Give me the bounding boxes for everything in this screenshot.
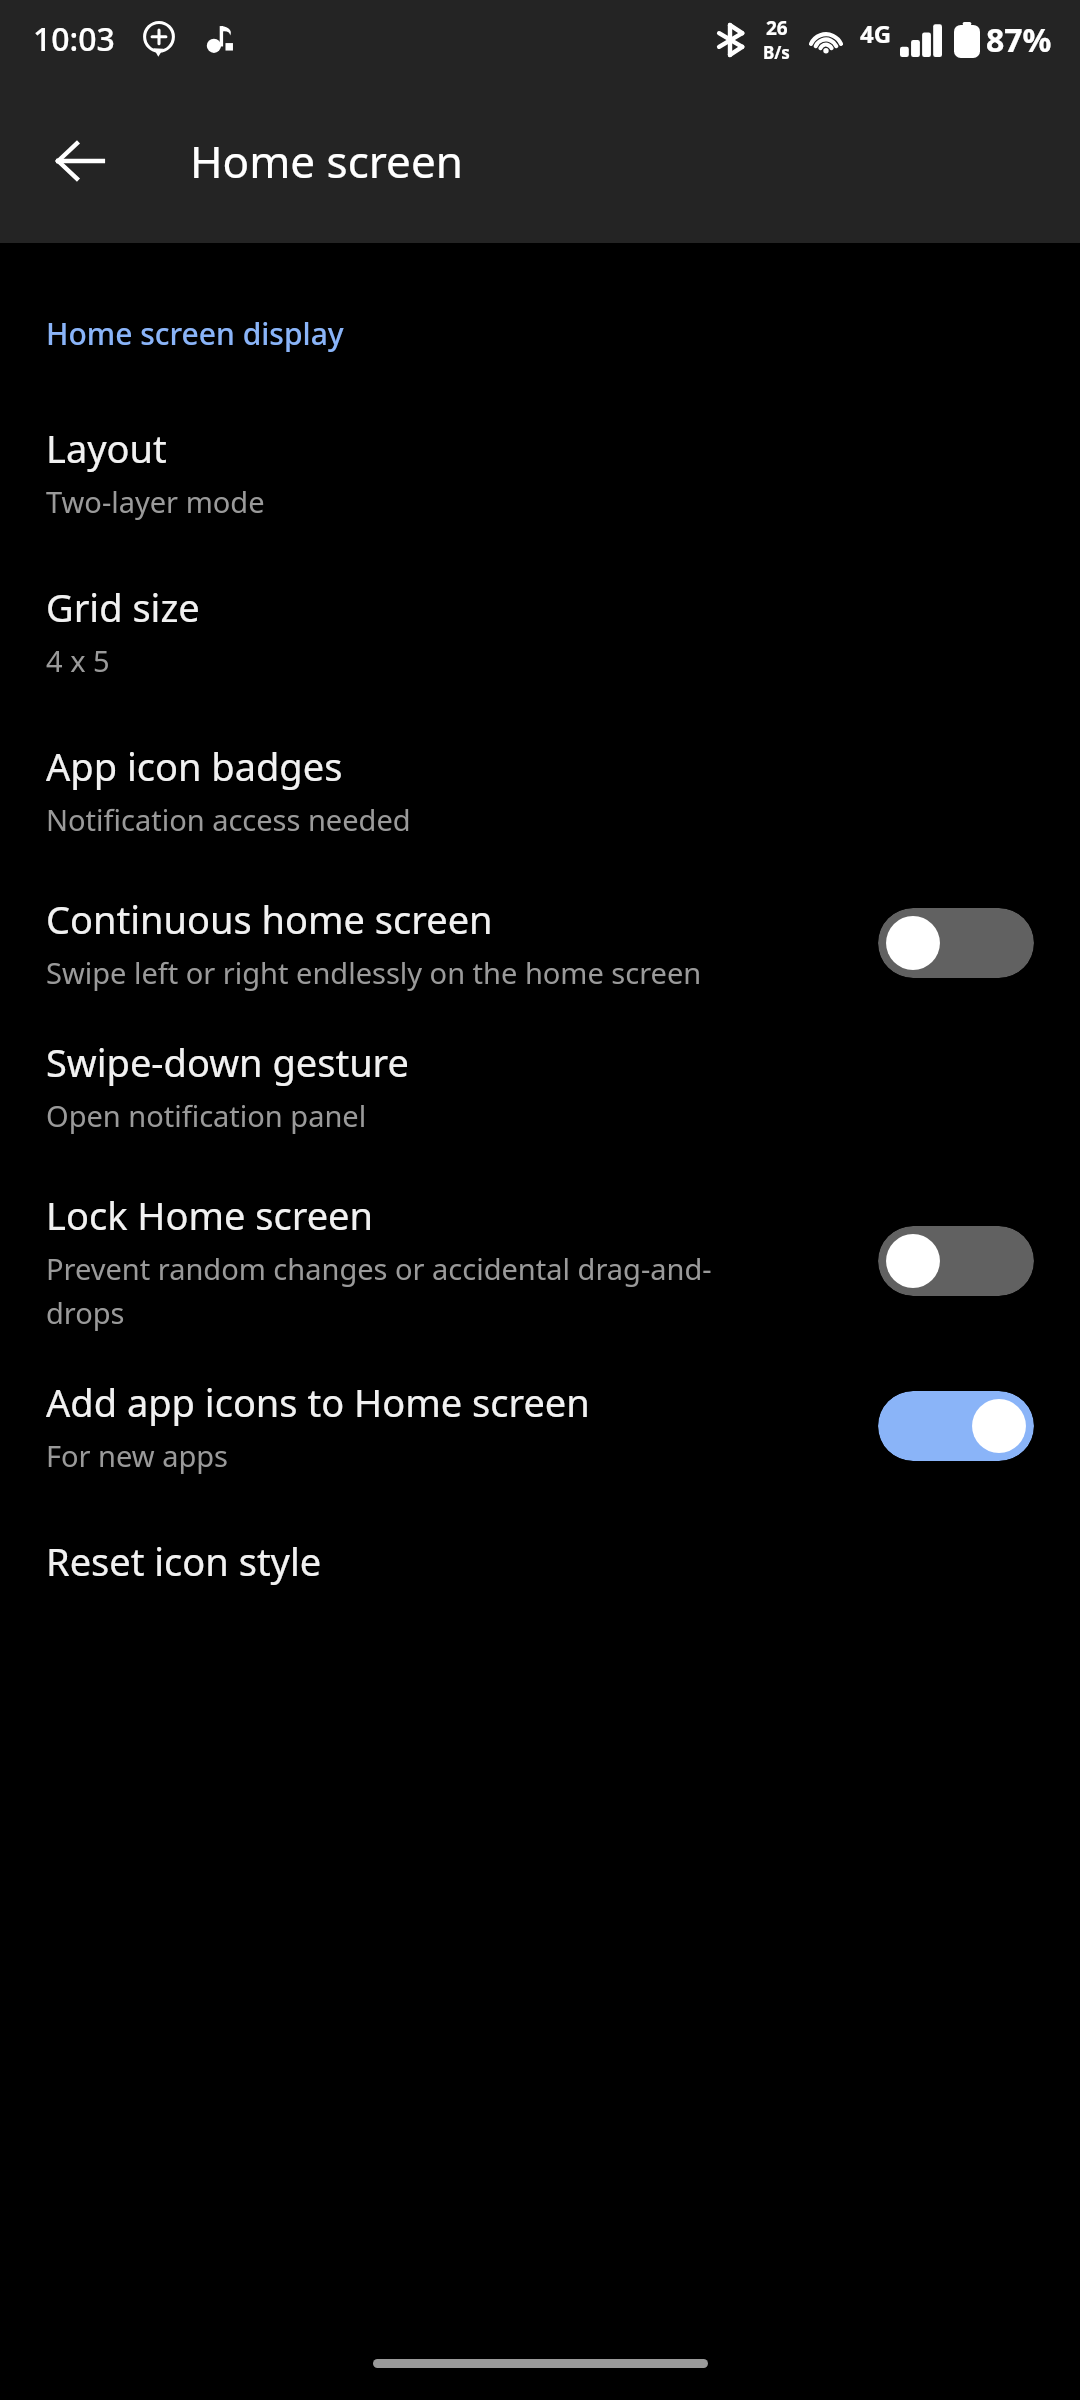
button[interactable]: Add app icons to Home screen bbox=[0, 1370, 1080, 1481]
button[interactable]: Off bbox=[878, 908, 1034, 978]
staticText: Notification access needed bbox=[46, 800, 411, 839]
staticText: 4 x 5 bbox=[46, 641, 110, 680]
staticText: Swipe left or right endlessly on the hom… bbox=[46, 953, 746, 992]
staticText: Prevent random changes or accidental dra… bbox=[46, 1249, 746, 1332]
staticText: Open notification panel bbox=[46, 1096, 367, 1135]
staticText: Home screen bbox=[190, 131, 463, 191]
staticText: B/s bbox=[763, 41, 790, 64]
button[interactable]: On bbox=[878, 1391, 1034, 1461]
staticText: 10:03 bbox=[33, 17, 115, 61]
staticText: Swipe-down gesture bbox=[46, 1036, 409, 1088]
button[interactable]: Back bbox=[28, 109, 132, 213]
staticText: Grid size bbox=[46, 581, 200, 633]
staticText: Reset icon style bbox=[46, 1535, 322, 1587]
staticText: 26 bbox=[766, 15, 788, 41]
button[interactable]: Swipe-down gesture bbox=[0, 1030, 1080, 1141]
button[interactable]: Grid size bbox=[0, 575, 1080, 686]
staticText: Continuous home screen bbox=[46, 893, 493, 945]
staticText: App icon badges bbox=[46, 740, 343, 792]
staticText: Lock Home screen bbox=[46, 1189, 374, 1241]
staticText: 4G bbox=[860, 17, 892, 50]
staticText: Two-layer mode bbox=[46, 482, 265, 521]
button[interactable]: Reset icon style bbox=[0, 1529, 1080, 1593]
staticText: 87% bbox=[986, 18, 1052, 62]
button[interactable]: Off bbox=[878, 1226, 1034, 1296]
button[interactable]: Layout bbox=[0, 416, 1080, 527]
staticText: Layout bbox=[46, 422, 167, 474]
button[interactable]: Lock Home screen bbox=[0, 1183, 1080, 1338]
staticText: Home screen display bbox=[46, 313, 344, 354]
staticText: Add app icons to Home screen bbox=[46, 1376, 590, 1428]
button[interactable]: Continuous home screen bbox=[0, 887, 1080, 998]
staticText: For new apps bbox=[46, 1436, 228, 1475]
button[interactable]: App icon badges bbox=[0, 734, 1080, 845]
